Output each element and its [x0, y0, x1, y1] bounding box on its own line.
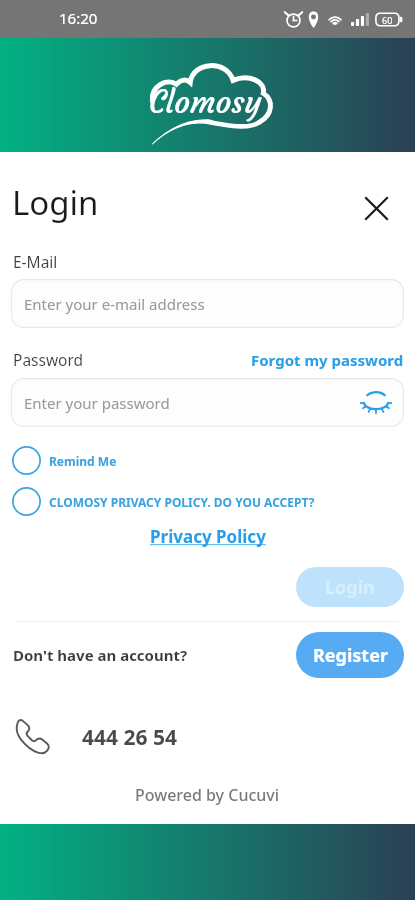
staticText: CLOMOSY PRIVACY POLICY. DO YOU ACCEPT?	[49, 494, 315, 510]
staticText: Enter your e-mail address	[24, 294, 205, 314]
staticText: 16:20	[59, 8, 98, 28]
staticText: Register	[313, 643, 388, 668]
staticText: E-Mail	[13, 251, 58, 272]
button[interactable]: Register	[296, 632, 404, 678]
button[interactable]: Call 444 26 54	[13, 716, 415, 758]
button[interactable]: CLOMOSY PRIVACY POLICY. DO YOU ACCEPT?	[12, 487, 415, 516]
staticText: Login	[12, 180, 99, 225]
staticText: Password	[13, 349, 84, 370]
button[interactable]: Enter your password	[11, 378, 404, 427]
button[interactable]: Remind Me	[12, 446, 415, 475]
other: Call 444 26 54	[13, 716, 55, 758]
staticText: Privacy Policy	[150, 525, 266, 548]
staticText: Remind Me	[49, 453, 117, 469]
staticText: Clomosy	[149, 83, 262, 122]
button[interactable]: Show password	[358, 385, 394, 421]
staticText: Login	[325, 575, 375, 600]
staticText: Forgot my password	[251, 350, 404, 370]
staticText: 444 26 54	[82, 723, 178, 752]
staticText: Don't have an account?	[13, 645, 188, 665]
button[interactable]: Close	[356, 188, 396, 228]
button[interactable]: Privacy Policy	[150, 525, 266, 548]
staticText: 60	[382, 14, 393, 26]
button[interactable]: Login	[296, 567, 404, 607]
staticText: Enter your password	[24, 393, 170, 413]
button[interactable]: Enter your e-mail address	[11, 279, 404, 328]
staticText: Powered by Cucuvi	[135, 784, 280, 806]
button[interactable]: Forgot my password	[251, 350, 404, 370]
